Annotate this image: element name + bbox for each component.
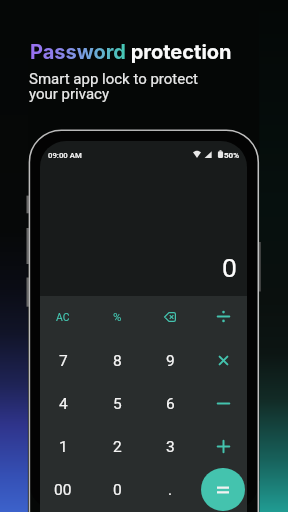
button[interactable]: 0 [91,468,143,511]
staticText: AC [56,311,70,323]
button[interactable]: 5 [91,382,143,425]
button[interactable]: 1 [40,425,89,468]
button[interactable]: 9 [144,339,196,382]
other: Multiply [217,354,230,367]
staticText: 6 [166,395,175,413]
button[interactable]: 00 [40,468,89,511]
button[interactable]: Backspace [144,295,196,338]
staticText: 8 [113,352,122,370]
button[interactable]: Minus [197,382,247,425]
button[interactable]: . [144,468,196,511]
button[interactable]: 2 [91,425,143,468]
button[interactable]: 3 [144,425,196,468]
other: Minus [217,397,230,410]
staticText: 0 [222,252,237,283]
button[interactable]: Equals [197,468,247,511]
staticText: Password protection [30,40,232,64]
button[interactable]: 7 [40,339,89,382]
button[interactable]: Plus [197,425,247,468]
button[interactable]: 8 [91,339,143,382]
staticText: 09:00 AM [48,151,82,160]
button[interactable]: Multiply [197,339,247,382]
button[interactable]: AC [40,295,89,338]
other: Plus [217,440,230,453]
other: Equals [201,468,245,511]
staticText: 7 [59,352,68,370]
staticText: % [113,310,122,323]
staticText: 2 [113,438,122,456]
staticText: 00 [54,481,72,499]
staticText: 50% [224,151,240,160]
staticText: Smart app lock to protect your privacy [29,70,198,103]
staticText: 5 [113,395,122,413]
staticText: 3 [166,438,175,456]
button[interactable]: Divide [197,295,247,338]
staticText: 9 [166,352,175,370]
staticText: 0 [113,481,122,499]
other: Backspace [164,312,176,322]
button[interactable]: 4 [40,382,89,425]
staticText: 1 [59,438,68,456]
button[interactable]: % [91,295,143,338]
staticText: . [168,481,173,499]
button[interactable]: 6 [144,382,196,425]
other: Divide [217,310,230,323]
staticText: 4 [59,395,68,413]
